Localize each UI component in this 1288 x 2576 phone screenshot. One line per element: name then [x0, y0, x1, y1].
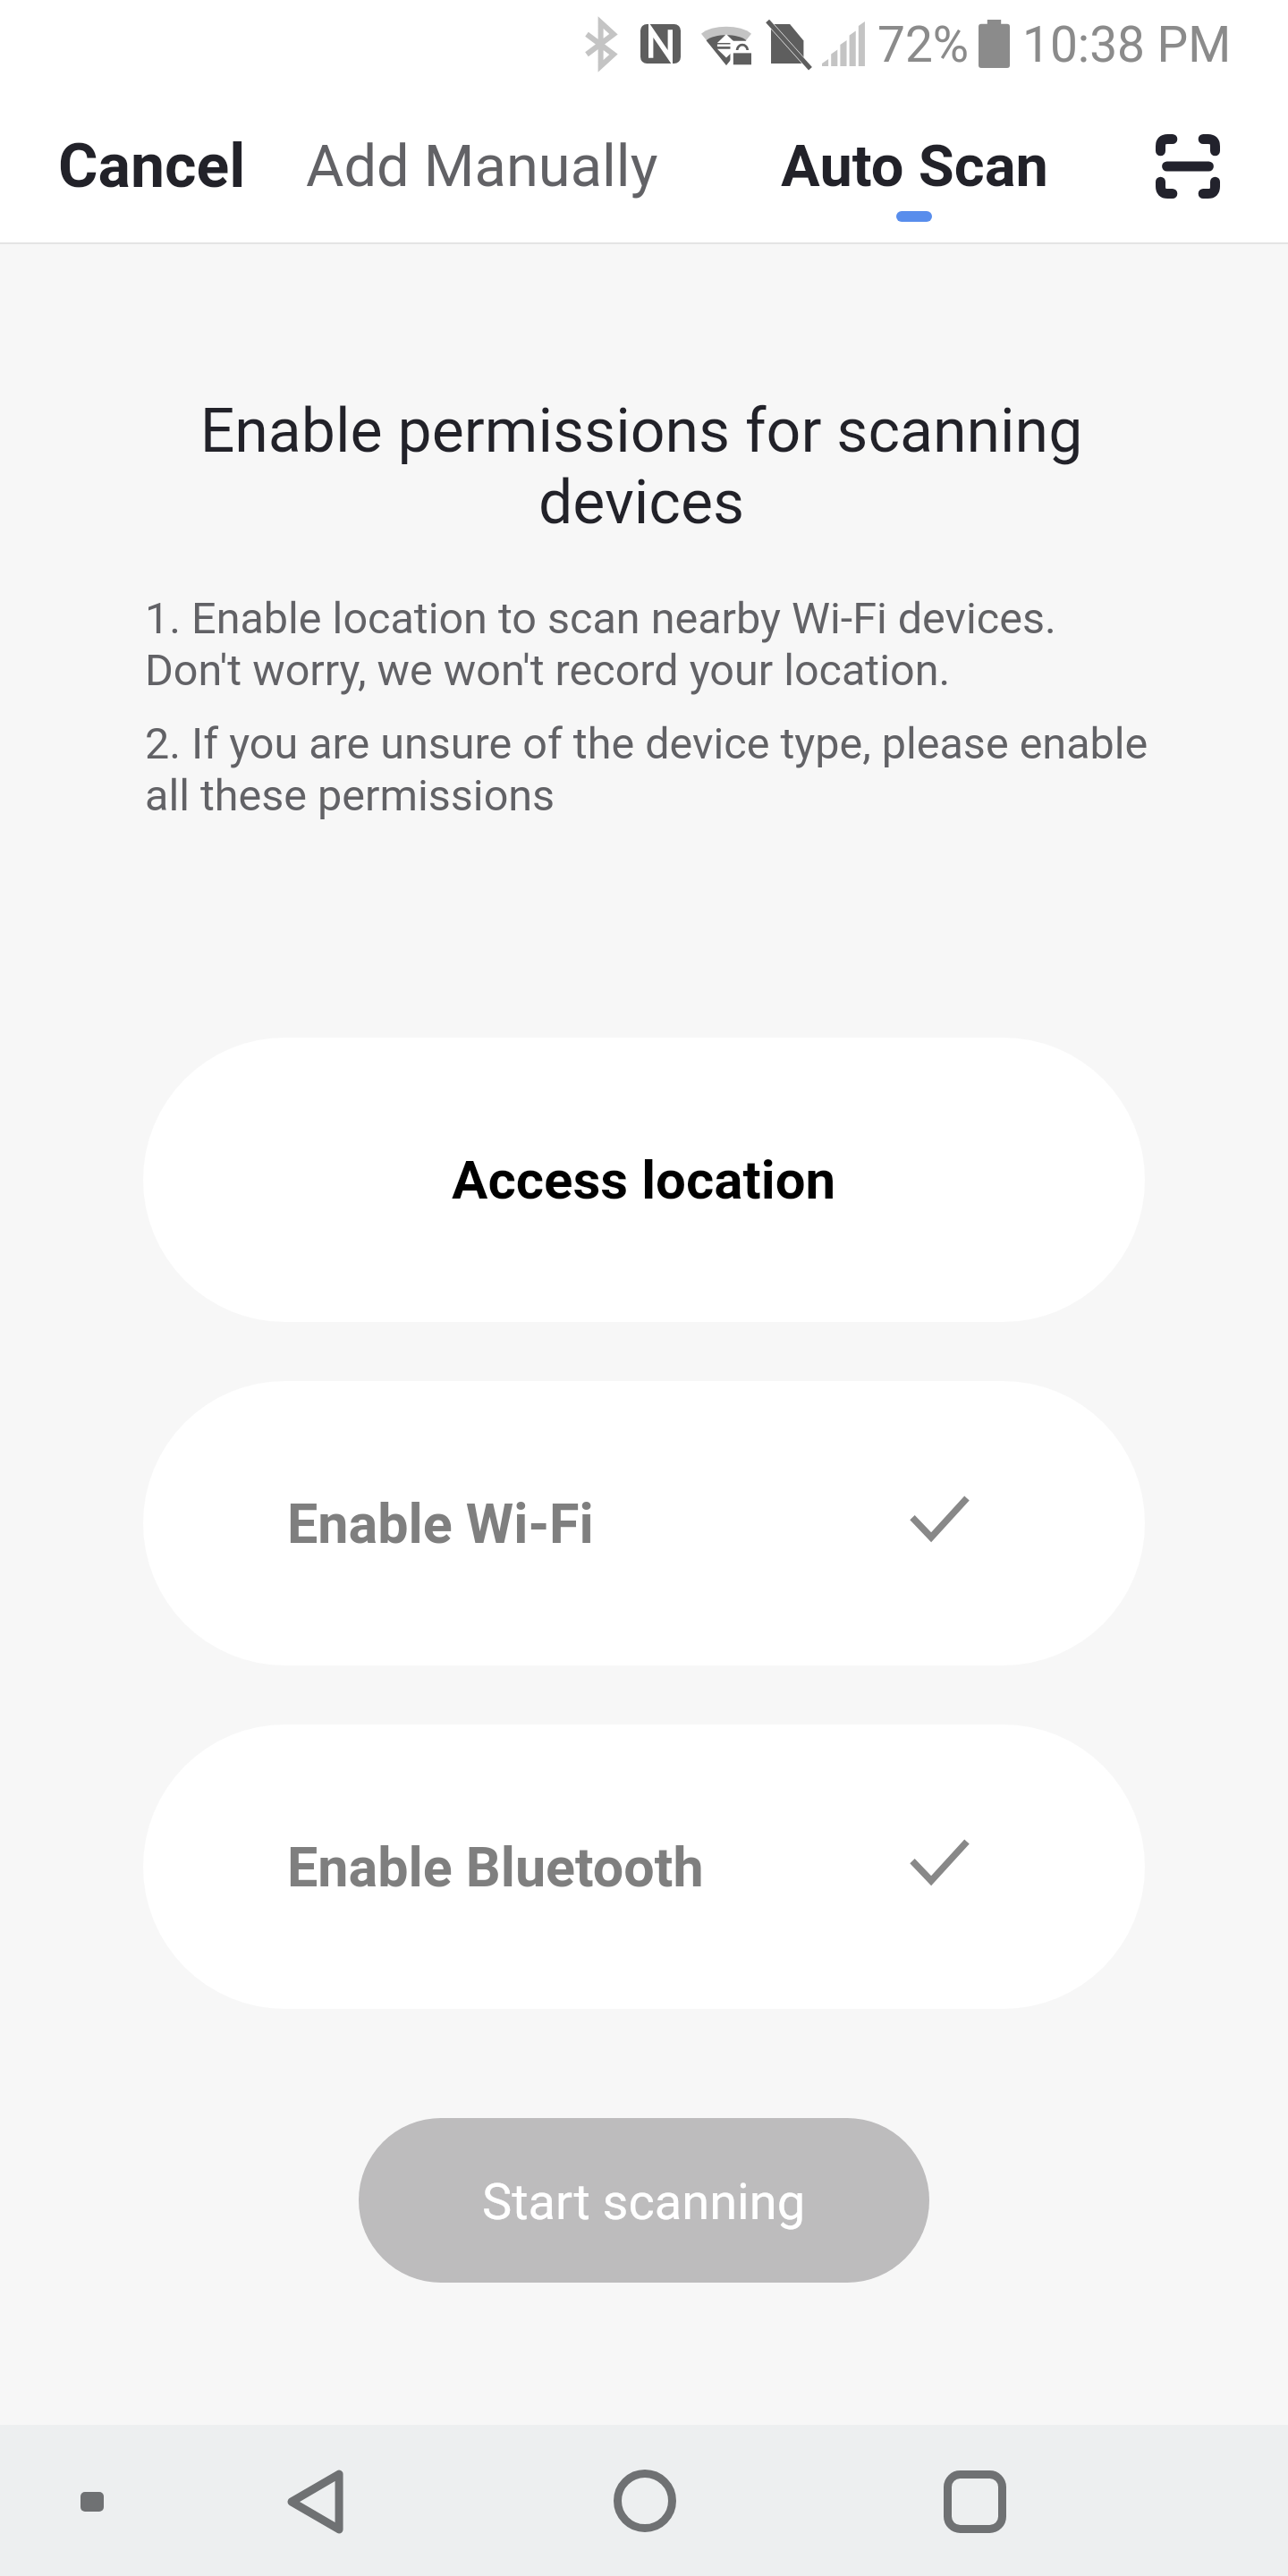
button[interactable]: Access location: [143, 1038, 1145, 1322]
staticText: 2. If you are unsure of the device type,…: [145, 718, 1151, 821]
staticText: Enable Wi-Fi: [287, 1492, 594, 1555]
staticText: Enable Bluetooth: [287, 1835, 704, 1899]
button[interactable]: Auto Scan: [762, 89, 1066, 242]
button[interactable]: Home: [596, 2452, 694, 2550]
staticText: 10:38 PM: [1022, 16, 1232, 73]
button[interactable]: Start scanning: [359, 2118, 929, 2283]
staticText: Auto Scan: [781, 132, 1048, 200]
staticText: 72%: [877, 16, 970, 73]
button[interactable]: Recent apps: [926, 2453, 1024, 2551]
staticText: 1. Enable location to scan nearby Wi-Fi …: [145, 593, 1151, 696]
button[interactable]: Enable Bluetooth: [143, 1724, 1145, 2009]
button[interactable]: Add Manually: [276, 89, 688, 242]
staticText: Start scanning: [482, 2173, 806, 2232]
staticText: Enable permissions for scanning devices: [149, 395, 1133, 538]
button[interactable]: Back: [267, 2453, 365, 2551]
button[interactable]: Cancel: [27, 89, 277, 242]
staticText: Cancel: [58, 131, 246, 202]
button[interactable]: Enable Wi-Fi: [143, 1381, 1145, 1665]
staticText: Add Manually: [306, 132, 658, 200]
button[interactable]: Scan QR code: [1113, 89, 1263, 242]
staticText: Access location: [452, 1148, 836, 1211]
